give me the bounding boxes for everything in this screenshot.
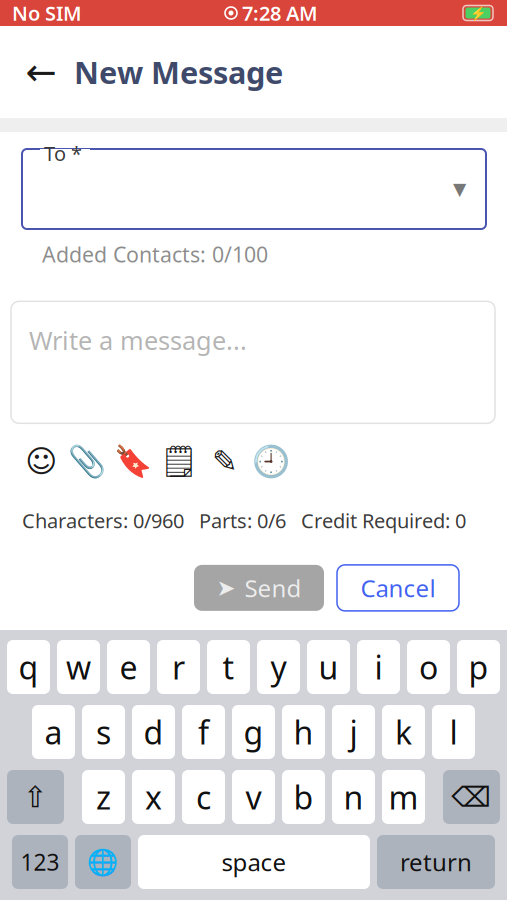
staticText: b — [293, 776, 313, 818]
button[interactable]: return — [377, 835, 495, 889]
button[interactable]: h — [282, 705, 325, 759]
staticText: f — [198, 711, 209, 753]
button[interactable]: c — [182, 770, 225, 824]
staticText: 123 — [20, 847, 59, 877]
staticText: o — [419, 646, 438, 688]
button[interactable]: t — [207, 640, 250, 694]
staticText: z — [96, 776, 111, 818]
staticText: q — [18, 646, 38, 688]
staticText: ⇧ — [23, 780, 48, 814]
staticText: k — [395, 711, 412, 753]
staticText: j — [349, 711, 357, 753]
button[interactable]: z — [82, 770, 125, 824]
button[interactable]: g — [232, 705, 275, 759]
button[interactable]: j — [332, 705, 375, 759]
button[interactable]: r — [157, 640, 200, 694]
button[interactable]: p — [457, 640, 500, 694]
staticText: x — [145, 776, 162, 818]
button[interactable]: Notes — [156, 441, 202, 481]
staticText: i — [374, 646, 382, 688]
staticText: v — [245, 776, 261, 818]
button[interactable]: e — [107, 640, 150, 694]
staticText: 🌐 — [87, 847, 119, 876]
staticText: return — [400, 846, 472, 878]
staticText: To * — [44, 140, 82, 167]
button[interactable]: Shift — [7, 770, 64, 824]
button[interactable]: f — [182, 705, 225, 759]
button[interactable]: Attach file — [64, 441, 110, 481]
staticText: ➤ — [216, 575, 235, 601]
staticText: 🗒 — [159, 444, 198, 479]
staticText: ← — [25, 51, 56, 93]
staticText: ⚡ — [469, 5, 486, 21]
staticText: 🔖 — [114, 444, 152, 479]
staticText: Characters: 0/960 Parts: 0/6 Credit Requ… — [22, 507, 466, 534]
button[interactable]: Next keyboard — [75, 835, 131, 889]
staticText: ☺ — [25, 444, 57, 479]
staticText: h — [293, 711, 313, 753]
staticText: e — [119, 646, 137, 688]
button[interactable]: s — [82, 705, 125, 759]
staticText: ⌫ — [451, 781, 491, 813]
staticText: n — [343, 776, 363, 818]
button[interactable]: Schedule — [248, 441, 294, 481]
button[interactable]: Emoji — [18, 441, 64, 481]
staticText: ✎ — [212, 444, 238, 479]
button[interactable]: d — [132, 705, 175, 759]
staticText: ▼ — [453, 179, 466, 199]
staticText: r — [172, 646, 185, 688]
button[interactable]: Signature — [202, 441, 248, 481]
staticText: New Message — [74, 52, 283, 92]
button[interactable]: x — [132, 770, 175, 824]
staticText: 📎 — [68, 444, 106, 479]
staticText: y — [270, 646, 286, 688]
staticText: g — [243, 711, 263, 753]
staticText: u — [318, 646, 338, 688]
button[interactable]: n — [332, 770, 375, 824]
button[interactable]: space — [138, 835, 370, 889]
button[interactable]: Back — [24, 50, 58, 94]
staticText: Added Contacts: 0/100 — [42, 240, 268, 268]
staticText: d — [143, 711, 163, 753]
button[interactable]: ➤ — [194, 565, 324, 611]
button[interactable]: q — [7, 640, 50, 694]
button[interactable]: 123 — [12, 835, 68, 889]
button[interactable]: k — [382, 705, 425, 759]
staticText: c — [196, 776, 211, 818]
staticText: Send — [244, 572, 301, 604]
staticText: m — [388, 776, 418, 818]
button[interactable]: y — [257, 640, 300, 694]
button[interactable]: a — [32, 705, 75, 759]
button[interactable]: Write a message — [0, 301, 495, 423]
button[interactable]: Templates — [110, 441, 156, 481]
staticText: a — [44, 711, 62, 753]
staticText: t — [222, 646, 234, 688]
staticText: Write a message... — [29, 323, 247, 357]
staticText: s — [96, 711, 111, 753]
staticText: space — [221, 846, 286, 878]
button[interactable]: w — [57, 640, 100, 694]
staticText: p — [468, 646, 488, 688]
button[interactable]: m — [382, 770, 425, 824]
button[interactable]: To, recipients — [0, 149, 486, 229]
staticText: 7:28 AM — [242, 0, 318, 26]
button[interactable]: o — [407, 640, 450, 694]
button[interactable]: Delete — [443, 770, 500, 824]
staticText: No SIM — [12, 0, 82, 26]
staticText: w — [66, 646, 91, 688]
button[interactable]: u — [307, 640, 350, 694]
staticText: 🕘 — [252, 444, 290, 479]
staticText: Cancel — [360, 572, 435, 604]
staticText: l — [449, 711, 457, 753]
button[interactable]: v — [232, 770, 275, 824]
button[interactable]: l — [432, 705, 475, 759]
button[interactable]: i — [357, 640, 400, 694]
button[interactable]: b — [282, 770, 325, 824]
button[interactable]: Cancel — [337, 565, 459, 611]
